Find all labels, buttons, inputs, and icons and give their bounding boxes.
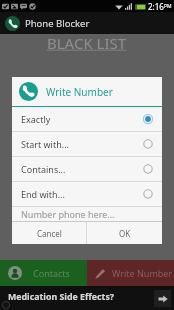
button[interactable]: Contains... bbox=[12, 157, 162, 181]
staticText: Cancel bbox=[37, 228, 62, 239]
staticText: Write Number bbox=[46, 85, 113, 99]
button[interactable]: End with... bbox=[12, 182, 162, 206]
staticText: Write Number bbox=[112, 267, 173, 279]
button[interactable]: Start with... bbox=[12, 132, 162, 156]
staticText: Phone Blocker bbox=[25, 17, 90, 30]
button[interactable]: Contacts bbox=[0, 260, 87, 286]
staticText: Contains... bbox=[21, 163, 66, 175]
button[interactable]: Write Number bbox=[87, 260, 174, 286]
staticText: OK bbox=[119, 228, 131, 239]
staticText: Contacts bbox=[33, 267, 70, 279]
button[interactable]: OK bbox=[87, 222, 162, 244]
button[interactable]: Cancel bbox=[12, 222, 86, 244]
staticText: Number phone here... bbox=[21, 208, 115, 220]
staticText: End with... bbox=[21, 188, 65, 200]
staticText: 2:16 bbox=[148, 1, 164, 12]
staticText: Medication Side Effects? bbox=[8, 291, 115, 303]
button[interactable]: Open advertisement bbox=[154, 290, 171, 307]
staticText: BLACK LIST bbox=[47, 33, 127, 53]
staticText: PM bbox=[164, 3, 172, 10]
staticText: Start with... bbox=[21, 138, 69, 150]
button[interactable]: Exactly bbox=[12, 107, 162, 131]
staticText: Exactly bbox=[21, 113, 51, 125]
